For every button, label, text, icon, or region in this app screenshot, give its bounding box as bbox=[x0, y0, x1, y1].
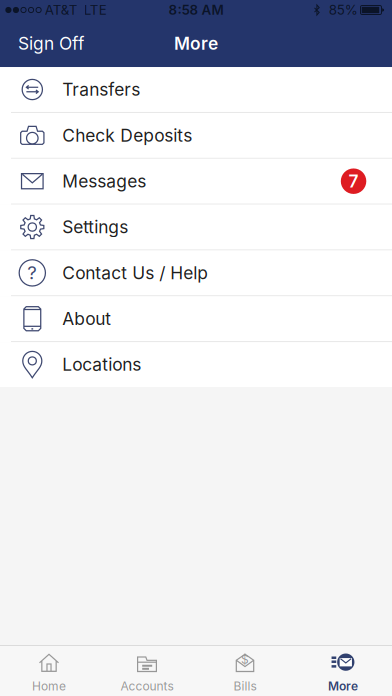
button[interactable]: $ bbox=[196, 646, 294, 696]
staticText: 7 bbox=[349, 171, 359, 192]
staticText: Messages bbox=[62, 171, 146, 192]
button[interactable]: Settings bbox=[0, 205, 392, 250]
button[interactable]: Accounts bbox=[98, 646, 196, 696]
button[interactable]: Home bbox=[0, 646, 98, 696]
staticText: Settings bbox=[62, 217, 128, 238]
staticText: 8:58 AM bbox=[168, 2, 223, 18]
staticText: Locations bbox=[62, 354, 141, 375]
staticText: Sign Off bbox=[18, 33, 84, 54]
staticText: ? bbox=[27, 261, 37, 284]
staticText: AT&T bbox=[45, 2, 78, 18]
staticText: 85% bbox=[329, 2, 358, 18]
staticText: LTE bbox=[84, 2, 107, 18]
staticText: Contact Us / Help bbox=[62, 262, 208, 283]
button[interactable]: Sign Off bbox=[0, 20, 96, 67]
staticText: More bbox=[328, 679, 358, 693]
staticText: Home bbox=[32, 679, 66, 693]
staticText: More bbox=[174, 33, 218, 54]
button[interactable]: About bbox=[0, 296, 392, 342]
button[interactable]: Messages bbox=[0, 159, 392, 205]
button[interactable]: Locations bbox=[0, 342, 392, 387]
button[interactable]: More bbox=[294, 646, 392, 696]
button[interactable]: Transfers bbox=[0, 67, 392, 113]
staticText: About bbox=[62, 308, 111, 329]
staticText: Bills bbox=[233, 679, 256, 693]
staticText: $ bbox=[241, 652, 249, 667]
staticText: Transfers bbox=[62, 79, 140, 100]
button[interactable]: Check Deposits bbox=[0, 113, 392, 159]
staticText: Check Deposits bbox=[62, 125, 192, 146]
button[interactable]: ? bbox=[0, 250, 392, 296]
staticText: Accounts bbox=[120, 679, 173, 693]
